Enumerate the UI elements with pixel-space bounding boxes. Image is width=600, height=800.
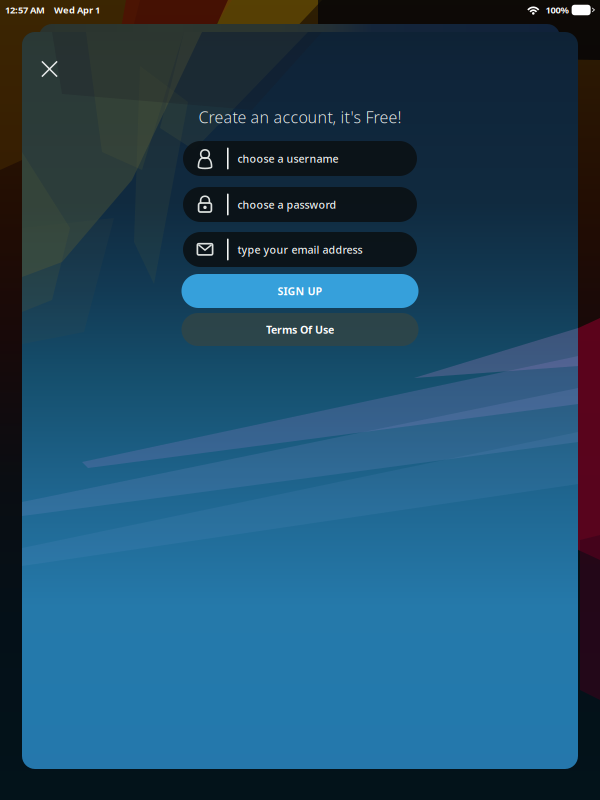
staticText: type your email address [238,242,363,257]
staticText: choose a username [238,151,339,166]
button[interactable]: Close [28,48,70,90]
button[interactable]: SIGN UP [181,274,418,308]
staticText: Wed Apr 1 [54,4,100,16]
staticText: Create an account, it's Free! [198,106,401,128]
staticText: choose a password [238,197,337,212]
button[interactable]: choose a username [183,141,417,176]
staticText: SIGN UP [277,284,322,298]
button[interactable]: Terms Of Use [181,313,418,346]
staticText: 12:57 AM [5,4,45,16]
staticText: 100% [545,4,568,16]
button[interactable]: choose a password [183,187,417,222]
staticText: Terms Of Use [266,322,334,337]
button[interactable]: type your email address [183,232,417,267]
